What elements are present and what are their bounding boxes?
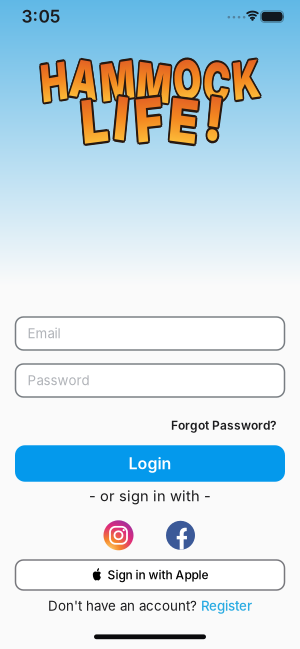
staticText: H [0,54,35,113]
staticText: ! [209,85,229,148]
staticText: H [0,51,37,109]
staticText: O [183,49,221,107]
staticText: - or sign in with - [89,487,211,505]
staticText: O [180,49,218,107]
staticText: K [261,52,298,111]
staticText: M [82,50,129,108]
staticText: K [265,51,300,109]
staticText: K [261,49,298,108]
staticText: C [223,55,260,113]
button[interactable]: Sign in with Apple [15,560,284,590]
staticText: A [41,49,80,107]
staticText: Register [201,598,252,614]
staticText: M [134,53,181,112]
staticText: F [134,89,165,152]
button[interactable]: Register [201,598,252,614]
staticText: A [38,52,77,110]
staticText: O [182,52,220,111]
staticText: I [111,85,127,148]
staticText: I [108,87,124,150]
staticText: L [75,89,105,152]
button[interactable]: Email [15,317,284,350]
staticText: Forgot Password? [171,418,277,433]
staticText: F [133,86,164,149]
staticText: O [182,48,220,106]
staticText: A [42,50,81,109]
staticText: Email [27,326,60,341]
staticText: C [221,54,258,113]
staticText: E [169,89,202,152]
staticText: M [84,52,131,110]
staticText: A [41,52,80,110]
staticText: L [74,87,104,150]
staticText: F [133,90,164,153]
button[interactable]: Sign in with Facebook [166,521,195,550]
staticText: H [1,51,38,110]
staticText: Password [27,373,89,388]
staticText: M [132,51,179,109]
staticText: O [180,52,218,110]
staticText: M [132,55,179,114]
staticText: ! [209,87,229,150]
staticText: M [130,55,177,113]
staticText: Sign in with Apple [107,568,208,582]
staticText: L [73,91,103,154]
staticText: L [74,90,104,153]
staticText: M [80,52,127,110]
staticText: E [172,87,205,150]
staticText: A [38,49,77,107]
staticText: M [133,52,180,110]
staticText: I [110,89,126,152]
staticText: A [38,50,77,109]
staticText: E [169,87,202,150]
staticText: H [0,53,35,111]
button[interactable]: Sign in with Instagram [103,520,133,550]
button[interactable]: Password [15,364,284,397]
button[interactable]: Forgot Password? [171,418,277,433]
staticText: E [169,90,202,153]
staticText: E [171,91,204,154]
staticText: M [130,53,177,112]
staticText: F [131,86,162,149]
staticText: ! [213,87,233,150]
staticText: E [172,90,205,153]
staticText: E [173,89,206,152]
staticText: ! [209,88,229,151]
staticText: C [224,51,261,110]
staticText: M [133,55,180,113]
staticText: A [40,48,79,106]
staticText: A [40,52,79,111]
staticText: ! [212,85,232,148]
staticText: C [223,51,260,109]
staticText: E [171,87,204,150]
staticText: I [112,87,128,150]
staticText: Don't have an account? [48,598,197,614]
staticText: M [83,53,130,112]
staticText: K [263,53,300,111]
staticText: C [221,51,258,110]
staticText: F [134,86,165,149]
staticText: M [80,50,127,109]
staticText: H [1,54,38,113]
staticText: M [130,52,177,110]
staticText: K [261,51,298,109]
staticText: ! [211,85,231,148]
staticText: O [183,52,221,110]
staticText: K [264,52,300,111]
staticText: H [0,51,35,110]
staticText: L [73,87,103,150]
staticText: I [111,88,127,151]
staticText: M [82,54,129,112]
staticText: C [225,53,262,111]
staticText: K [263,49,300,107]
staticText: F [131,89,162,152]
staticText: H [2,53,39,111]
staticText: ! [212,88,232,151]
staticText: I [110,85,126,148]
staticText: O [184,50,222,109]
button[interactable]: Login [15,445,285,482]
staticText: I [108,88,124,151]
staticText: M [80,53,127,112]
staticText: I [108,85,124,148]
staticText: K [264,49,300,108]
